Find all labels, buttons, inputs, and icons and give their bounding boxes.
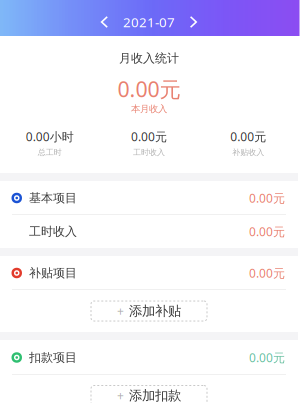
button[interactable]: 基本项目	[0, 181, 298, 215]
staticText: 工时收入	[29, 224, 77, 239]
button[interactable]: Previous month	[96, 12, 113, 31]
button[interactable]: 扣款项目	[0, 340, 298, 375]
staticText: 补贴收入	[232, 147, 264, 157]
button[interactable]: 工时收入	[0, 215, 298, 248]
staticText: 基本项目	[29, 191, 77, 205]
button[interactable]: +	[0, 290, 298, 332]
staticText: 月收入统计	[119, 51, 179, 66]
staticText: 0.00元	[249, 349, 285, 365]
staticText: +	[117, 303, 124, 319]
staticText: 0.00元	[117, 75, 180, 103]
staticText: 添加扣款	[129, 387, 181, 403]
staticText: 总工时	[38, 147, 62, 157]
staticText: 本月收入	[131, 103, 167, 115]
staticText: 补贴项目	[29, 266, 77, 280]
staticText: 2021-07	[123, 13, 175, 31]
staticText: 0.00元	[131, 128, 167, 144]
staticText: 0.00元	[249, 223, 285, 239]
staticText: +	[117, 387, 124, 403]
button[interactable]: Next month	[185, 12, 202, 31]
button[interactable]: +	[0, 375, 298, 403]
staticText: 添加补贴	[129, 303, 181, 319]
button[interactable]: 补贴项目	[0, 256, 298, 290]
staticText: 0.00元	[249, 265, 285, 281]
staticText: 工时收入	[133, 147, 165, 157]
staticText: 扣款项目	[29, 350, 77, 365]
staticText: 0.00小时	[26, 128, 74, 144]
staticText: 0.00元	[230, 128, 266, 144]
staticText: 0.00元	[249, 190, 285, 206]
